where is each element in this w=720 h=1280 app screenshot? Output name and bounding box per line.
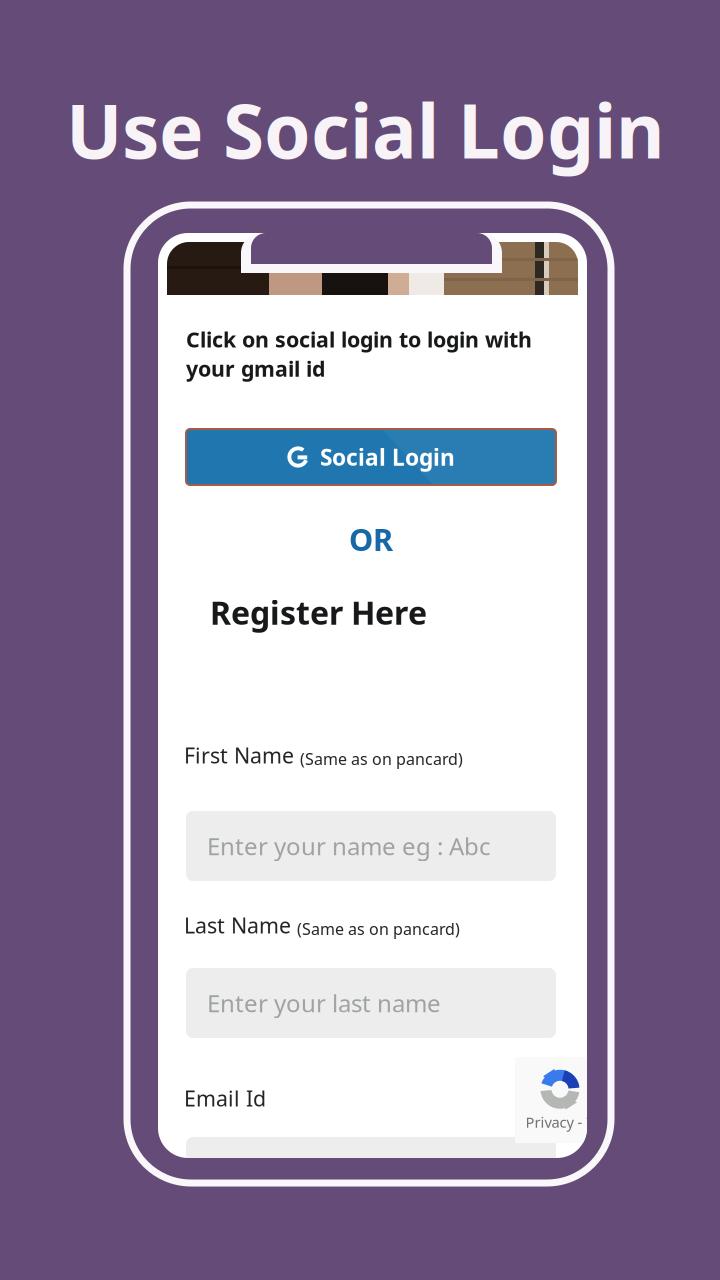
staticText: Click on social login to login with [186, 325, 532, 353]
staticText: Privacy - T [525, 1112, 594, 1132]
button[interactable]: Enter your last name [186, 968, 556, 1038]
staticText: (Same as on pancard) [300, 748, 463, 769]
staticText: Last Name [184, 911, 291, 939]
staticText: Use Social Login [66, 80, 665, 179]
staticText: First Name [184, 741, 294, 769]
staticText: (Same as on pancard) [297, 918, 460, 939]
staticText: Email Id [184, 1084, 266, 1112]
staticText: your gmail id [186, 354, 325, 383]
staticText: Social Login [320, 442, 455, 472]
button[interactable]: Social Login [186, 429, 556, 485]
staticText: Register Here [210, 591, 427, 633]
staticText: Enter your name eg : Abc [207, 830, 491, 862]
button[interactable]: OR [186, 523, 556, 555]
staticText: Enter your last name [207, 987, 441, 1019]
button[interactable]: Enter your name eg : Abc [186, 811, 556, 881]
staticText: OR [349, 519, 393, 559]
